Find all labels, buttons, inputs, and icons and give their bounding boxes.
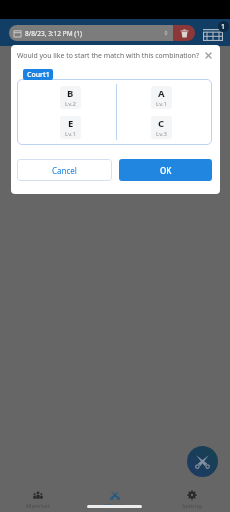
staticText: Lv.3	[156, 130, 167, 138]
staticText: A	[158, 87, 165, 100]
staticText: Lv.1	[65, 130, 76, 138]
staticText: Would you like to start the match with t…	[17, 51, 203, 60]
button[interactable]: Delete	[173, 25, 195, 41]
button[interactable]: Cancel	[17, 159, 112, 181]
staticText: Lv.2	[65, 100, 76, 108]
staticText: B	[67, 87, 74, 100]
staticText: C	[158, 117, 165, 130]
button[interactable]: Court1	[23, 69, 53, 80]
button[interactable]: Close	[202, 49, 215, 62]
staticText: 8/8/23, 3:12 PM (1)	[25, 29, 163, 38]
staticText: 1	[221, 22, 226, 32]
button[interactable]: Courts	[202, 21, 228, 47]
staticText: Cancel	[52, 165, 77, 176]
staticText: Setting	[182, 502, 202, 510]
button[interactable]: OK	[119, 159, 212, 181]
button[interactable]: Setting	[153, 487, 230, 510]
staticText: Match	[106, 502, 124, 510]
button[interactable]: Match	[76, 487, 153, 510]
button[interactable]: 8/8/23, 3:12 PM (1)	[9, 25, 173, 41]
staticText: Lv.1	[156, 100, 167, 108]
staticText: Court1	[27, 70, 50, 80]
button[interactable]: Start match	[187, 446, 218, 477]
button[interactable]: Member	[0, 487, 76, 510]
staticText: E	[68, 117, 74, 130]
staticText: OK	[160, 165, 172, 176]
staticText: Member	[26, 502, 50, 510]
